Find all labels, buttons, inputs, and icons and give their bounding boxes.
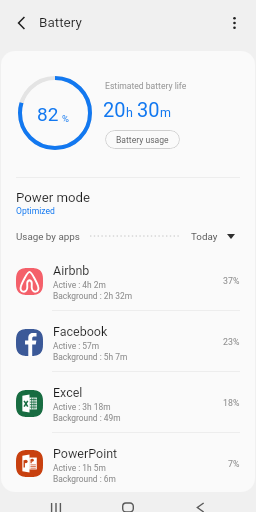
staticText: 20 [103,98,126,121]
staticText: 30 [137,98,160,121]
staticText: Active : 1h 5m [53,463,106,473]
staticText: Power mode [16,190,90,205]
staticText: Estimated battery life [105,81,187,91]
staticText: 37% [223,276,240,286]
staticText: Background : 6m [53,474,116,484]
button[interactable]: Facebook [1,311,255,371]
button[interactable]: Back [7,9,35,37]
staticText: Excel [53,385,83,400]
staticText: Battery usage [116,135,169,145]
staticText: m [160,105,171,120]
staticText: Usage by apps [16,231,80,242]
staticText: 7% [228,459,240,469]
button[interactable]: Power mode [1,178,255,222]
staticText: Battery [39,14,82,30]
button[interactable]: Airbnb [1,250,255,310]
staticText: PowerPoint [53,446,118,461]
staticText: Background : 2h 32m [53,291,133,301]
staticText: Active : 57m [53,341,100,351]
staticText: Background : 49m [53,413,121,423]
staticText: Optimized [16,206,55,216]
staticText: Facebook [53,324,108,339]
staticText: % [62,113,69,124]
staticText: Active : 3h 18m [53,402,111,412]
staticText: 82 [37,103,59,125]
staticText: Active : 4h 2m [53,280,106,290]
staticText: Background : 5h 7m [53,352,128,362]
button[interactable]: More options [220,9,248,37]
staticText: h [126,105,133,120]
button[interactable]: Recent apps [32,492,80,512]
staticText: Airbnb [53,263,90,278]
button[interactable]: Excel [1,372,255,432]
button[interactable]: Home [104,492,152,512]
staticText: 18% [223,398,240,408]
button[interactable]: Battery usage [105,130,180,149]
button[interactable]: Back [176,492,224,512]
staticText: Today [191,231,218,242]
button[interactable]: PowerPoint [1,433,255,492]
staticText: 23% [223,337,240,347]
button[interactable]: Today [191,231,235,242]
